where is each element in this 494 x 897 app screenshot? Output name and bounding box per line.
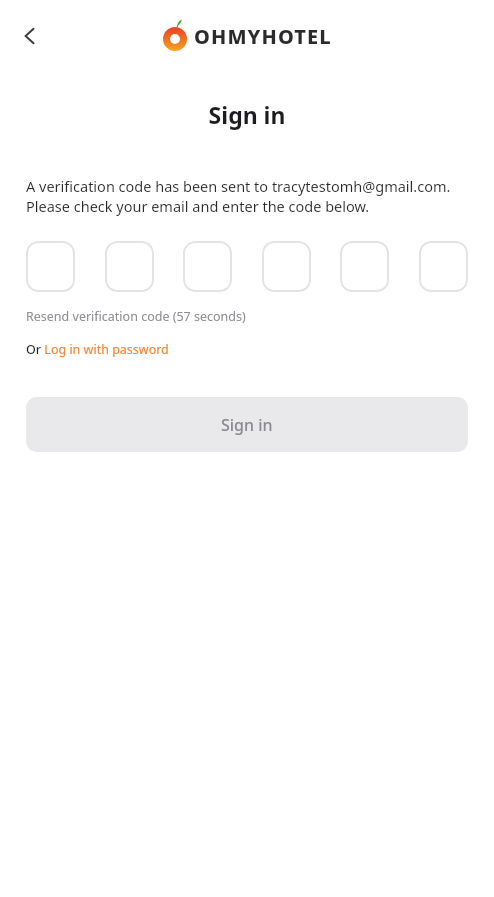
button[interactable]: Code digit 6 [419, 241, 468, 292]
button[interactable]: Or Log in with password [26, 341, 169, 358]
staticText: Sign in [0, 99, 494, 130]
button[interactable]: Code digit 2 [105, 241, 154, 292]
button[interactable]: Code digit 5 [340, 241, 389, 292]
staticText: Or Log in with password [26, 341, 169, 358]
staticText: Sign in [221, 414, 273, 436]
button[interactable]: Code digit 3 [183, 241, 232, 292]
staticText: OHMYHOTEL [194, 23, 332, 50]
button[interactable]: Code digit 4 [262, 241, 311, 292]
button[interactable]: Back [6, 12, 54, 60]
staticText: Resend verification code (57 seconds) [26, 308, 246, 325]
button[interactable]: Code digit 1 [26, 241, 75, 292]
staticText: A verification code has been sent to tra… [26, 176, 468, 217]
button[interactable]: Resend verification code (57 seconds) [26, 308, 246, 325]
button[interactable]: Sign in [26, 397, 468, 452]
